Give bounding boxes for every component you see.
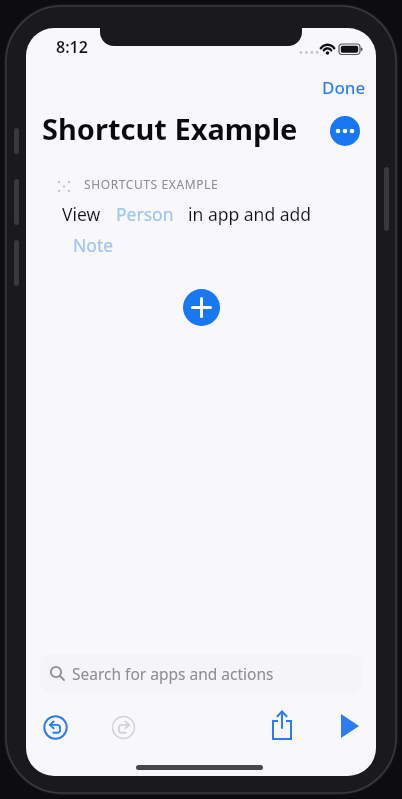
staticText: Shortcut Example bbox=[42, 109, 298, 148]
button[interactable] bbox=[330, 116, 360, 146]
staticText: SHORTCUTS EXAMPLE bbox=[84, 176, 219, 192]
button[interactable] bbox=[266, 708, 300, 742]
button[interactable] bbox=[110, 714, 137, 741]
staticText: Done bbox=[322, 76, 366, 99]
staticText: 8:12 bbox=[56, 36, 88, 58]
button[interactable] bbox=[183, 289, 220, 326]
staticText: Note bbox=[73, 233, 114, 257]
staticText: Person bbox=[116, 202, 174, 226]
button[interactable]: Done bbox=[314, 76, 362, 100]
button[interactable] bbox=[42, 714, 69, 741]
button[interactable] bbox=[338, 712, 362, 736]
button[interactable]: Search for apps and actions bbox=[40, 654, 362, 692]
staticText: View bbox=[62, 202, 101, 226]
staticText: in app and add bbox=[188, 202, 312, 226]
staticText: Search for apps and actions bbox=[72, 663, 274, 684]
